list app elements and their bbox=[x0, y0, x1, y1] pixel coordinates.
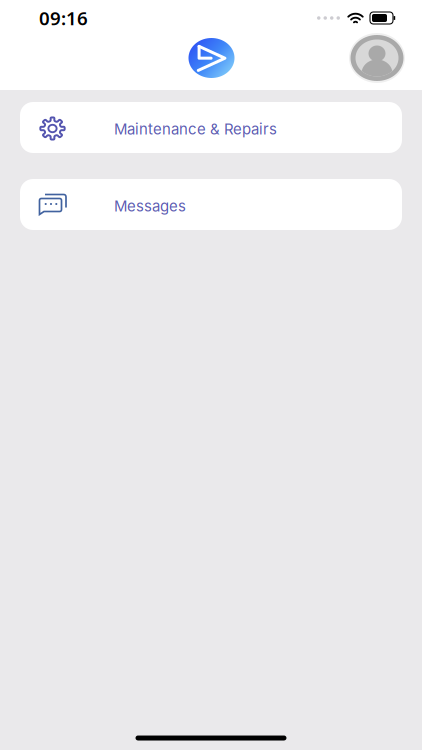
staticText: Maintenance & Repairs bbox=[114, 120, 277, 138]
button[interactable]: Messages bbox=[20, 179, 402, 230]
button[interactable]: Maintenance & Repairs bbox=[20, 102, 402, 153]
button[interactable]: Account bbox=[349, 33, 405, 83]
staticText: Messages bbox=[114, 197, 186, 215]
staticText: 09:16 bbox=[39, 6, 88, 30]
